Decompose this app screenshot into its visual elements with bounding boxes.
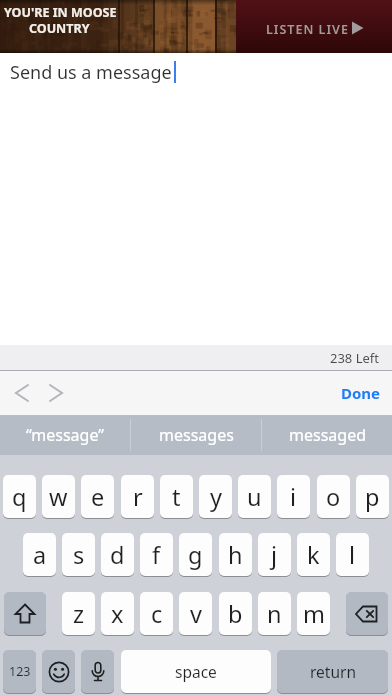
button[interactable]: space <box>121 650 271 693</box>
button[interactable]: YOU'RE IN MOOSE <box>0 0 392 53</box>
button[interactable]: a <box>23 533 56 576</box>
staticText: YOU'RE IN MOOSE <box>4 4 117 21</box>
staticText: messages <box>159 424 234 446</box>
staticText: 238 Left <box>330 349 379 367</box>
button[interactable] <box>6 370 39 415</box>
staticText: n <box>267 598 282 630</box>
staticText: messaged <box>289 424 366 446</box>
button[interactable]: y <box>199 475 232 518</box>
button[interactable]: l <box>336 533 369 576</box>
button[interactable] <box>40 370 73 415</box>
button[interactable]: messaged <box>262 415 392 455</box>
button[interactable]: k <box>297 533 330 576</box>
button[interactable]: return <box>277 650 388 693</box>
button[interactable]: b <box>219 592 252 635</box>
button[interactable]: p <box>356 475 389 518</box>
staticText: space <box>175 661 217 682</box>
button[interactable]: Done <box>330 370 392 415</box>
staticText: g <box>188 539 203 571</box>
staticText: d <box>110 539 125 571</box>
staticText: q <box>12 481 27 513</box>
staticText: c <box>151 598 163 630</box>
staticText: e <box>91 481 105 513</box>
staticText: COUNTRY <box>29 20 90 37</box>
button[interactable] <box>42 650 75 693</box>
staticText: y <box>210 481 222 513</box>
button[interactable]: u <box>238 475 271 518</box>
button[interactable]: e <box>81 475 114 518</box>
button[interactable]: z <box>62 592 95 635</box>
button[interactable]: n <box>258 592 291 635</box>
staticText: i <box>290 481 297 513</box>
button[interactable]: g <box>179 533 212 576</box>
button[interactable]: j <box>258 533 291 576</box>
staticText: return <box>310 661 356 682</box>
staticText: Send us a message <box>10 60 172 84</box>
staticText: j <box>271 539 278 571</box>
staticText: a <box>33 539 47 571</box>
staticText: o <box>326 481 341 513</box>
staticText: s <box>73 539 85 571</box>
staticText: LISTEN LIVE <box>266 21 349 38</box>
button[interactable]: 123 <box>3 650 36 693</box>
button[interactable]: Send us a message <box>0 53 392 345</box>
button[interactable]: r <box>121 475 154 518</box>
button[interactable]: messages <box>131 415 261 455</box>
staticText: h <box>228 539 243 571</box>
staticText: m <box>303 598 325 630</box>
button[interactable]: t <box>160 475 193 518</box>
button[interactable] <box>81 650 114 693</box>
staticText: “message” <box>26 424 105 446</box>
button[interactable]: w <box>42 475 75 518</box>
staticText: z <box>73 598 85 630</box>
staticText: p <box>365 481 380 513</box>
staticText: 123 <box>9 663 31 680</box>
staticText: Done <box>341 383 381 403</box>
staticText: r <box>133 481 143 513</box>
button[interactable] <box>4 592 46 635</box>
staticText: b <box>228 598 243 630</box>
staticText: x <box>111 598 124 630</box>
button[interactable]: o <box>317 475 350 518</box>
button[interactable]: f <box>140 533 173 576</box>
staticText: u <box>247 481 262 513</box>
staticText: t <box>172 481 181 513</box>
staticText: l <box>349 539 356 571</box>
button[interactable]: v <box>179 592 212 635</box>
button[interactable]: h <box>219 533 252 576</box>
staticText: w <box>49 481 68 513</box>
button[interactable]: “message” <box>0 415 130 455</box>
staticText: v <box>190 598 202 630</box>
button[interactable]: x <box>101 592 134 635</box>
button[interactable]: q <box>3 475 36 518</box>
staticText: f <box>152 539 161 571</box>
button[interactable]: i <box>277 475 310 518</box>
button[interactable]: c <box>140 592 173 635</box>
button[interactable]: d <box>101 533 134 576</box>
button[interactable]: m <box>297 592 330 635</box>
button[interactable]: s <box>62 533 95 576</box>
button[interactable] <box>346 592 388 635</box>
staticText: k <box>307 539 320 571</box>
